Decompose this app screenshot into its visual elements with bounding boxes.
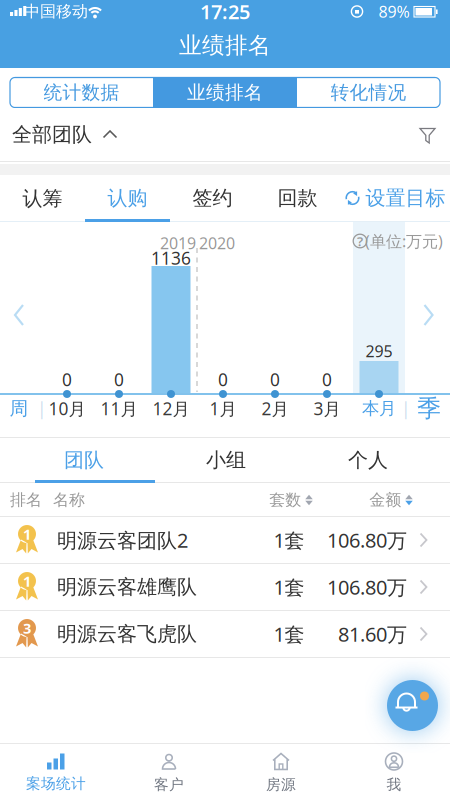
staticText: 团队 <box>64 448 104 472</box>
button[interactable]: 11月 <box>100 397 137 420</box>
staticText: 小组 <box>206 448 246 472</box>
staticText: 认筹 <box>22 186 62 211</box>
button[interactable]: 套数 <box>269 490 313 510</box>
button[interactable]: 回款 <box>255 174 340 221</box>
button[interactable]: 个人 <box>297 438 438 482</box>
button[interactable]: 我 <box>384 752 404 793</box>
staticText: 2020 <box>199 232 235 254</box>
staticText: 回款 <box>277 186 317 210</box>
staticText: 业绩排名 <box>179 32 271 59</box>
staticText: 客户 <box>154 775 184 793</box>
staticText: 1月 <box>209 397 236 420</box>
staticText: 0 <box>322 368 332 391</box>
button[interactable]: 1月 <box>209 397 236 420</box>
staticText: (单位:万元) <box>365 230 443 252</box>
staticText: ? <box>357 232 363 250</box>
staticText: 统计数据 <box>43 81 119 104</box>
button[interactable]: 1 <box>0 564 450 610</box>
staticText: 11月 <box>100 397 137 420</box>
staticText: 2月 <box>261 397 288 420</box>
staticText: 转化情况 <box>330 81 406 104</box>
staticText: 房源 <box>266 775 296 793</box>
staticText: 295 <box>365 340 392 362</box>
button[interactable]: 通知 <box>387 680 438 731</box>
button[interactable]: 认购 <box>85 174 170 221</box>
button[interactable]: 金额 <box>369 490 413 510</box>
staticText: 12月 <box>152 397 189 420</box>
staticText: 0 <box>62 368 72 391</box>
staticText: 106.80万 <box>327 574 407 600</box>
staticText: 全部团队 <box>12 122 92 147</box>
button[interactable]: 统计数据 <box>10 77 153 107</box>
button[interactable]: 1 <box>0 517 450 563</box>
staticText: 17:25 <box>200 0 250 25</box>
staticText: 0 <box>114 368 124 391</box>
staticText: 周 <box>9 397 28 420</box>
button[interactable]: 下一页 <box>423 305 433 325</box>
staticText: 1 <box>23 524 31 544</box>
button[interactable]: 3 <box>0 611 450 657</box>
staticText: 设置目标 <box>365 186 445 210</box>
staticText: 业绩排名 <box>187 81 263 104</box>
staticText: 套数 <box>269 490 301 510</box>
staticText: | <box>37 397 47 420</box>
staticText: 明源云客飞虎队 <box>57 622 197 646</box>
button[interactable]: 筛选 <box>419 127 437 144</box>
staticText: 本月 <box>362 398 396 419</box>
staticText: 3月 <box>313 397 340 420</box>
staticText: 106.80万 <box>327 527 407 553</box>
button[interactable]: 10月 <box>48 397 85 420</box>
staticText: 签约 <box>192 186 232 210</box>
staticText: 0 <box>218 368 228 391</box>
staticText: 10月 <box>48 397 85 420</box>
staticText: 案场统计 <box>26 774 86 792</box>
staticText: 个人 <box>348 448 388 472</box>
button[interactable]: 案场统计 <box>26 753 86 792</box>
staticText: 1套 <box>273 574 304 600</box>
button[interactable]: 转化情况 <box>297 77 440 107</box>
button[interactable]: 帮助 <box>352 233 368 249</box>
staticText: 金额 <box>369 490 401 510</box>
staticText: 1套 <box>273 527 304 553</box>
staticText: | <box>401 397 411 420</box>
button[interactable]: 小组 <box>155 438 296 482</box>
button[interactable]: 认筹 <box>0 175 85 222</box>
button[interactable]: 业绩排名 <box>154 77 296 107</box>
staticText: 3 <box>23 618 31 638</box>
staticText: 1 <box>23 571 31 591</box>
button[interactable]: 本月 <box>362 398 396 419</box>
button[interactable]: 12月 <box>152 397 189 420</box>
button[interactable]: 全部团队 <box>0 108 117 161</box>
button[interactable]: 3月 <box>313 397 340 420</box>
staticText: 认购 <box>107 186 147 210</box>
staticText: 排名 <box>10 490 42 510</box>
staticText: 0 <box>270 368 280 391</box>
button[interactable]: 设置目标 <box>344 186 445 210</box>
button[interactable]: 季 <box>417 394 441 423</box>
staticText: 我 <box>386 775 401 793</box>
staticText: 81.60万 <box>338 621 407 647</box>
staticText: 2019 <box>160 232 196 254</box>
staticText: 中国移动 <box>24 2 88 21</box>
staticText: 明源云客团队2 <box>57 527 188 553</box>
button[interactable]: 客户 <box>154 752 184 793</box>
button[interactable]: 团队 <box>13 438 154 482</box>
staticText: 名称 <box>53 490 85 510</box>
staticText: 89% <box>378 1 409 22</box>
staticText: 1套 <box>273 621 304 647</box>
button[interactable]: 周 <box>9 397 28 420</box>
staticText: 季 <box>417 394 441 423</box>
button[interactable]: 上一页 <box>14 305 24 325</box>
staticText: 明源云客雄鹰队 <box>57 575 197 599</box>
staticText: 1136 <box>151 246 191 269</box>
button[interactable]: 签约 <box>170 174 255 221</box>
button[interactable]: 房源 <box>266 752 296 793</box>
button[interactable]: 2月 <box>261 397 288 420</box>
